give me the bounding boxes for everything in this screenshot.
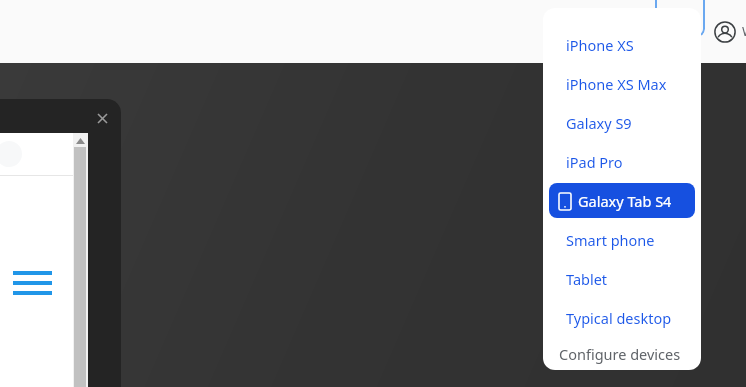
staticText: W [742, 22, 746, 40]
staticText: Smart phone [566, 230, 655, 250]
staticText: Tablet [566, 269, 608, 289]
button[interactable]: Galaxy Tab S4 [549, 183, 695, 218]
button[interactable]: iPhone XS [543, 25, 701, 64]
button[interactable] [655, 0, 705, 37]
button[interactable]: Configure devices [543, 337, 701, 370]
staticText: iPhone XS [566, 35, 634, 55]
button[interactable]: Smart phone [543, 220, 701, 259]
button[interactable]: Tablet [543, 259, 701, 298]
staticText: Typical desktop [566, 308, 672, 328]
button[interactable]: Galaxy S9 [543, 103, 701, 142]
staticText: Galaxy Tab S4 [578, 191, 672, 211]
button[interactable]: Typical desktop [543, 298, 701, 337]
staticText: iPad Pro [566, 152, 623, 172]
button[interactable]: iPad Pro [543, 142, 701, 181]
button[interactable]: Close [92, 108, 112, 128]
button[interactable]: iPhone XS Max [543, 64, 701, 103]
button[interactable]: Account [711, 18, 739, 46]
staticText: Galaxy S9 [566, 113, 632, 133]
staticText: iPhone XS Max [566, 74, 667, 94]
staticText: Configure devices [559, 344, 681, 364]
